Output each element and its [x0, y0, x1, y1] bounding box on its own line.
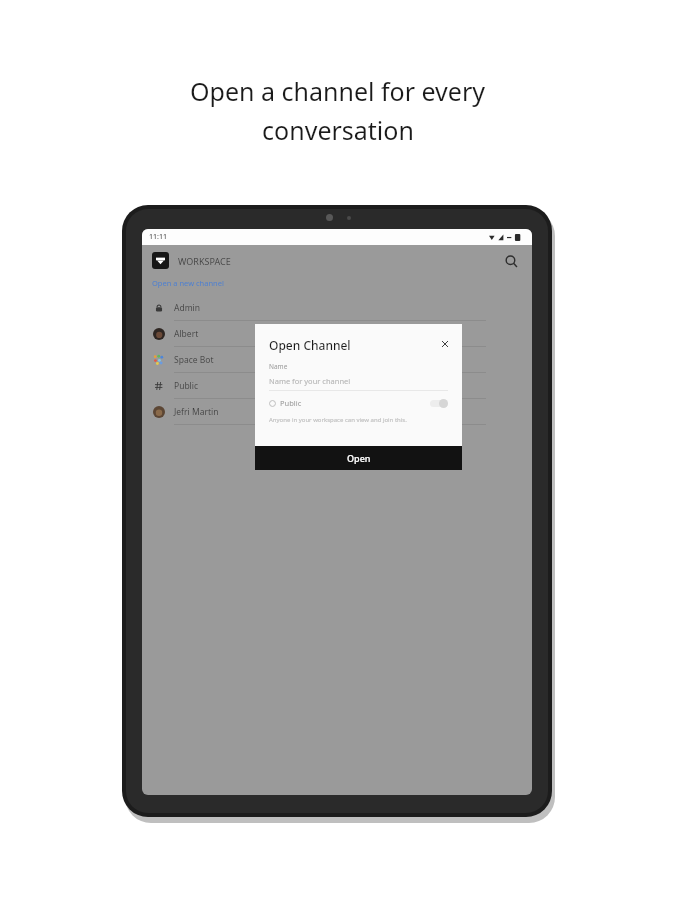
staticText: 11:11	[149, 232, 167, 242]
button[interactable]: Public	[269, 398, 448, 408]
button[interactable]: Admin	[142, 295, 532, 321]
button[interactable]: Workspace logo	[152, 252, 169, 269]
button[interactable]: Public	[142, 373, 532, 399]
staticText: Open a channel for every	[190, 74, 485, 108]
button[interactable]: Open	[255, 446, 462, 470]
staticText: Admin	[174, 302, 201, 314]
button[interactable]: Albert	[142, 321, 532, 347]
staticText: Anyone in your workspace can view and jo…	[269, 416, 407, 424]
staticText: Public	[174, 380, 199, 392]
staticText: Open	[347, 452, 371, 464]
button[interactable]: Search	[500, 250, 522, 272]
staticText: Albert	[174, 328, 199, 340]
button[interactable]: Space Bot	[142, 347, 532, 373]
button[interactable]: Jefri Martin	[142, 399, 532, 425]
staticText: Jefri Martin	[174, 406, 219, 418]
staticText: Name	[269, 362, 288, 371]
staticText: Space Bot	[174, 354, 214, 366]
button[interactable]: Close	[438, 337, 452, 351]
staticText: Name for your channel	[269, 376, 351, 386]
staticText: conversation	[262, 113, 414, 147]
staticText: Public	[280, 398, 302, 408]
staticText: Open a new channel	[152, 278, 224, 288]
staticText: Open Channel	[269, 337, 351, 353]
button[interactable]: Open a new channel	[152, 278, 224, 288]
staticText: WORKSPACE	[178, 255, 231, 267]
